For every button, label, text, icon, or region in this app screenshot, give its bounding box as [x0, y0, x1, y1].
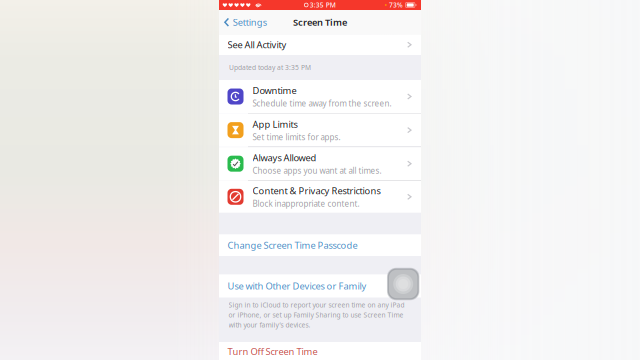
staticText: Content & Privacy Restrictions	[252, 184, 380, 197]
staticText: Updated today at 3:35 PM	[229, 63, 311, 72]
button[interactable]: Use with Other Devices or Family	[219, 274, 421, 297]
button[interactable]: Downtime	[219, 80, 421, 113]
staticText: Change Screen Time Passcode	[227, 239, 357, 251]
staticText: Screen Time	[293, 16, 347, 28]
staticText: Sign in to iCloud to report your screen …	[228, 300, 404, 309]
staticText: See All Activity	[227, 39, 286, 51]
staticText: App Limits	[252, 118, 297, 130]
staticText: Downtime	[252, 84, 296, 97]
staticText: Schedule time away from the screen.	[252, 98, 391, 109]
staticText: 73%	[389, 1, 403, 9]
button[interactable]: See All Activity	[219, 34, 421, 55]
staticText: 3:35 PM	[310, 1, 336, 9]
staticText: Choose apps you want at all times.	[252, 165, 381, 176]
staticText: Use with Other Devices or Family	[227, 280, 366, 292]
button[interactable]: App Limits	[219, 114, 421, 147]
staticText: with your family’s devices.	[228, 321, 310, 329]
button[interactable]: AssistiveTouch	[387, 267, 420, 300]
staticText: Set time limits for apps.	[252, 132, 340, 142]
staticText: Turn Off Screen Time	[227, 345, 317, 358]
button[interactable]: Change Screen Time Passcode	[219, 234, 421, 256]
staticText: or iPhone, or set up Family Sharing to u…	[228, 311, 403, 319]
button[interactable]: Settings	[219, 10, 279, 34]
staticText: Settings	[233, 16, 267, 28]
staticText: Always Allowed	[252, 151, 316, 164]
button[interactable]: Turn Off Screen Time	[219, 342, 421, 360]
staticText: Block inappropriate content.	[252, 198, 359, 209]
button[interactable]: Content & Privacy Restrictions	[219, 181, 421, 213]
button[interactable]: Always Allowed	[219, 147, 421, 180]
